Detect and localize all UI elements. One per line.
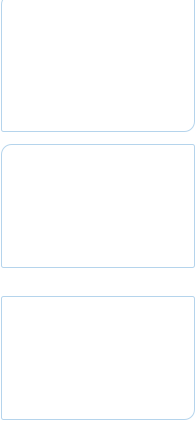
- button[interactable]: Card 2: [1, 144, 194, 267]
- button[interactable]: Card 1: [1, 0, 194, 131]
- button[interactable]: Card 3: [1, 296, 194, 419]
